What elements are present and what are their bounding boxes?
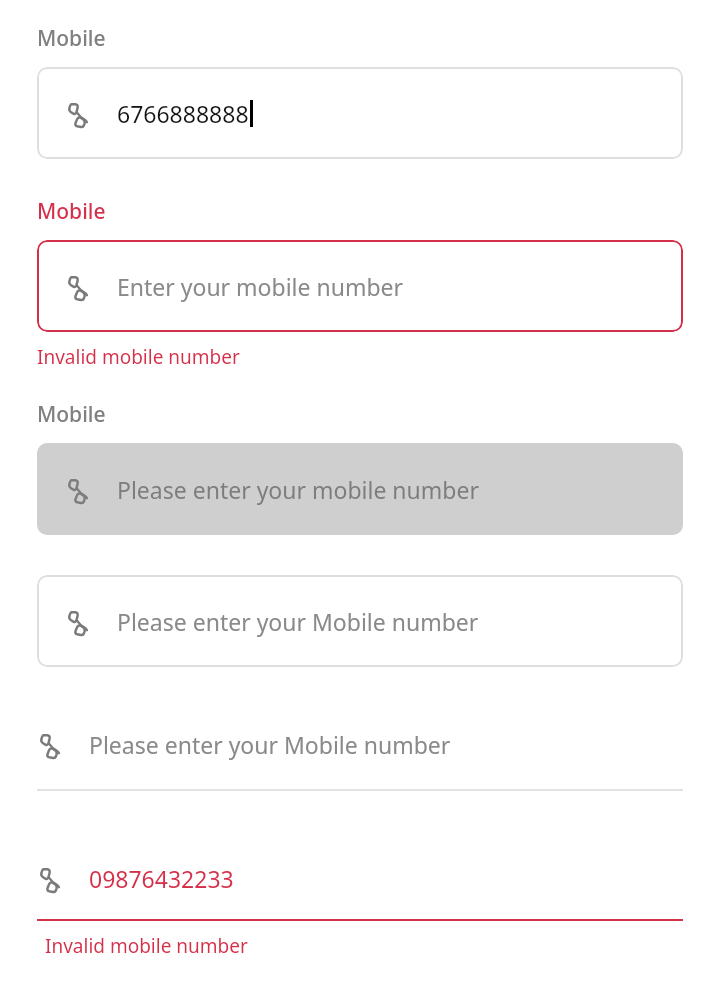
button[interactable]: Please enter your mobile number: [37, 443, 683, 535]
staticText: Invalid mobile number: [45, 933, 248, 959]
button[interactable]: 09876432233: [37, 849, 683, 921]
staticText: Invalid mobile number: [37, 344, 240, 370]
button[interactable]: Please enter your Mobile number: [37, 711, 683, 791]
staticText: Please enter your Mobile number: [117, 606, 479, 637]
staticText: Mobile: [37, 24, 106, 53]
button[interactable]: Enter your mobile number: [37, 240, 683, 332]
staticText: 6766888888: [117, 98, 249, 129]
button[interactable]: 6766888888: [37, 67, 683, 159]
staticText: 09876432233: [89, 863, 234, 894]
staticText: Mobile: [37, 400, 106, 429]
staticText: Please enter your mobile number: [117, 474, 479, 505]
staticText: Mobile: [37, 197, 106, 226]
staticText: Enter your mobile number: [117, 271, 404, 302]
staticText: Please enter your Mobile number: [89, 729, 451, 760]
button[interactable]: Please enter your Mobile number: [37, 575, 683, 667]
